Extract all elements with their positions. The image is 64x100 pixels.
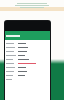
button[interactable] bbox=[6, 41, 50, 45]
button[interactable] bbox=[6, 69, 50, 73]
button[interactable] bbox=[6, 65, 50, 69]
button[interactable] bbox=[6, 61, 50, 65]
button[interactable] bbox=[6, 53, 50, 57]
button[interactable] bbox=[6, 49, 50, 53]
button[interactable] bbox=[6, 73, 50, 77]
button[interactable] bbox=[6, 77, 50, 81]
button[interactable] bbox=[6, 45, 50, 49]
button[interactable] bbox=[5, 31, 50, 40]
button[interactable] bbox=[6, 57, 50, 61]
